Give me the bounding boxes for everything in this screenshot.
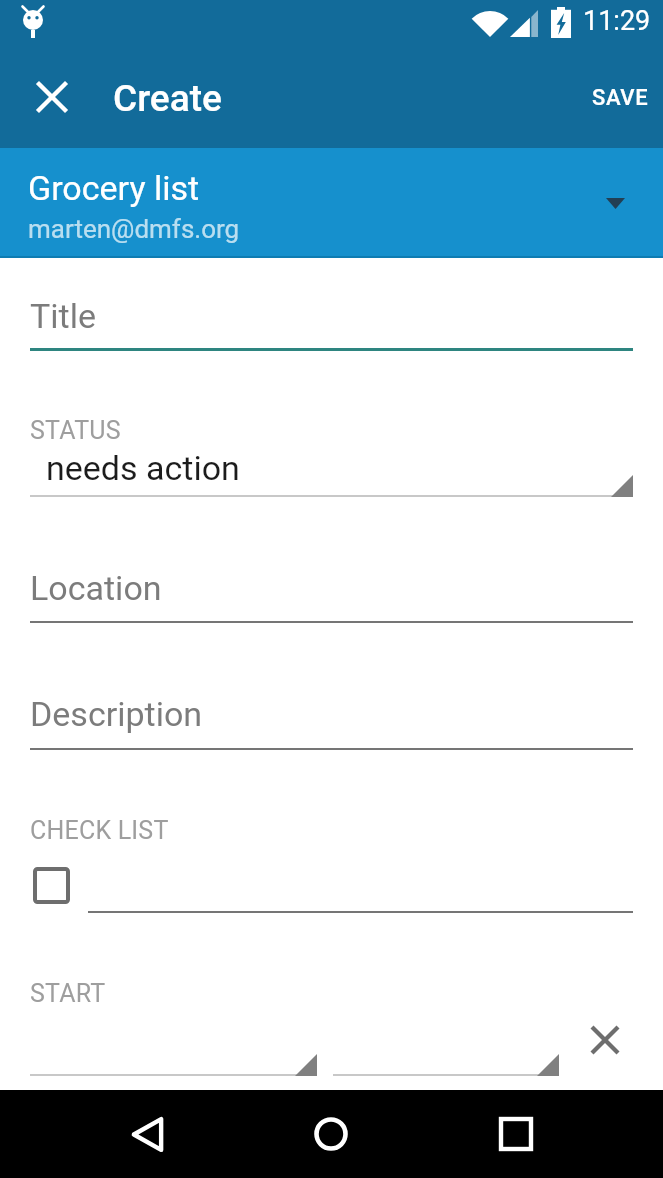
button[interactable]: Clear start date	[580, 1015, 630, 1065]
staticText: Create	[113, 77, 222, 120]
staticText: Title	[30, 296, 96, 336]
staticText: Grocery list	[28, 168, 200, 208]
staticText: needs action	[46, 448, 240, 488]
staticText: Description	[30, 694, 203, 734]
staticText: START	[30, 979, 106, 1008]
staticText: marten@dmfs.org	[28, 214, 240, 244]
button[interactable]: needs action	[30, 444, 633, 497]
button[interactable]: Start time	[333, 1026, 559, 1076]
button[interactable]: Recent apps	[474, 1090, 558, 1178]
button[interactable]: Back	[105, 1090, 189, 1178]
button[interactable]: Create	[100, 62, 235, 134]
button[interactable]: Grocery list	[0, 148, 663, 258]
staticText: STATUS	[30, 416, 121, 445]
button[interactable]: SAVE	[573, 62, 663, 134]
staticText: CHECK LIST	[30, 816, 169, 845]
button[interactable]: Location	[30, 554, 633, 623]
staticText: SAVE	[592, 85, 649, 111]
staticText: 11:29	[583, 5, 651, 37]
button[interactable]: Close	[16, 61, 88, 133]
button[interactable]: Title	[30, 282, 633, 352]
button[interactable]: New check list item	[88, 866, 633, 912]
button[interactable]: Check list item checkbox	[35, 869, 68, 902]
button[interactable]: Start date	[30, 1026, 317, 1076]
staticText: Location	[30, 568, 162, 608]
button[interactable]: Description	[30, 680, 633, 750]
button[interactable]: Home	[289, 1090, 373, 1178]
